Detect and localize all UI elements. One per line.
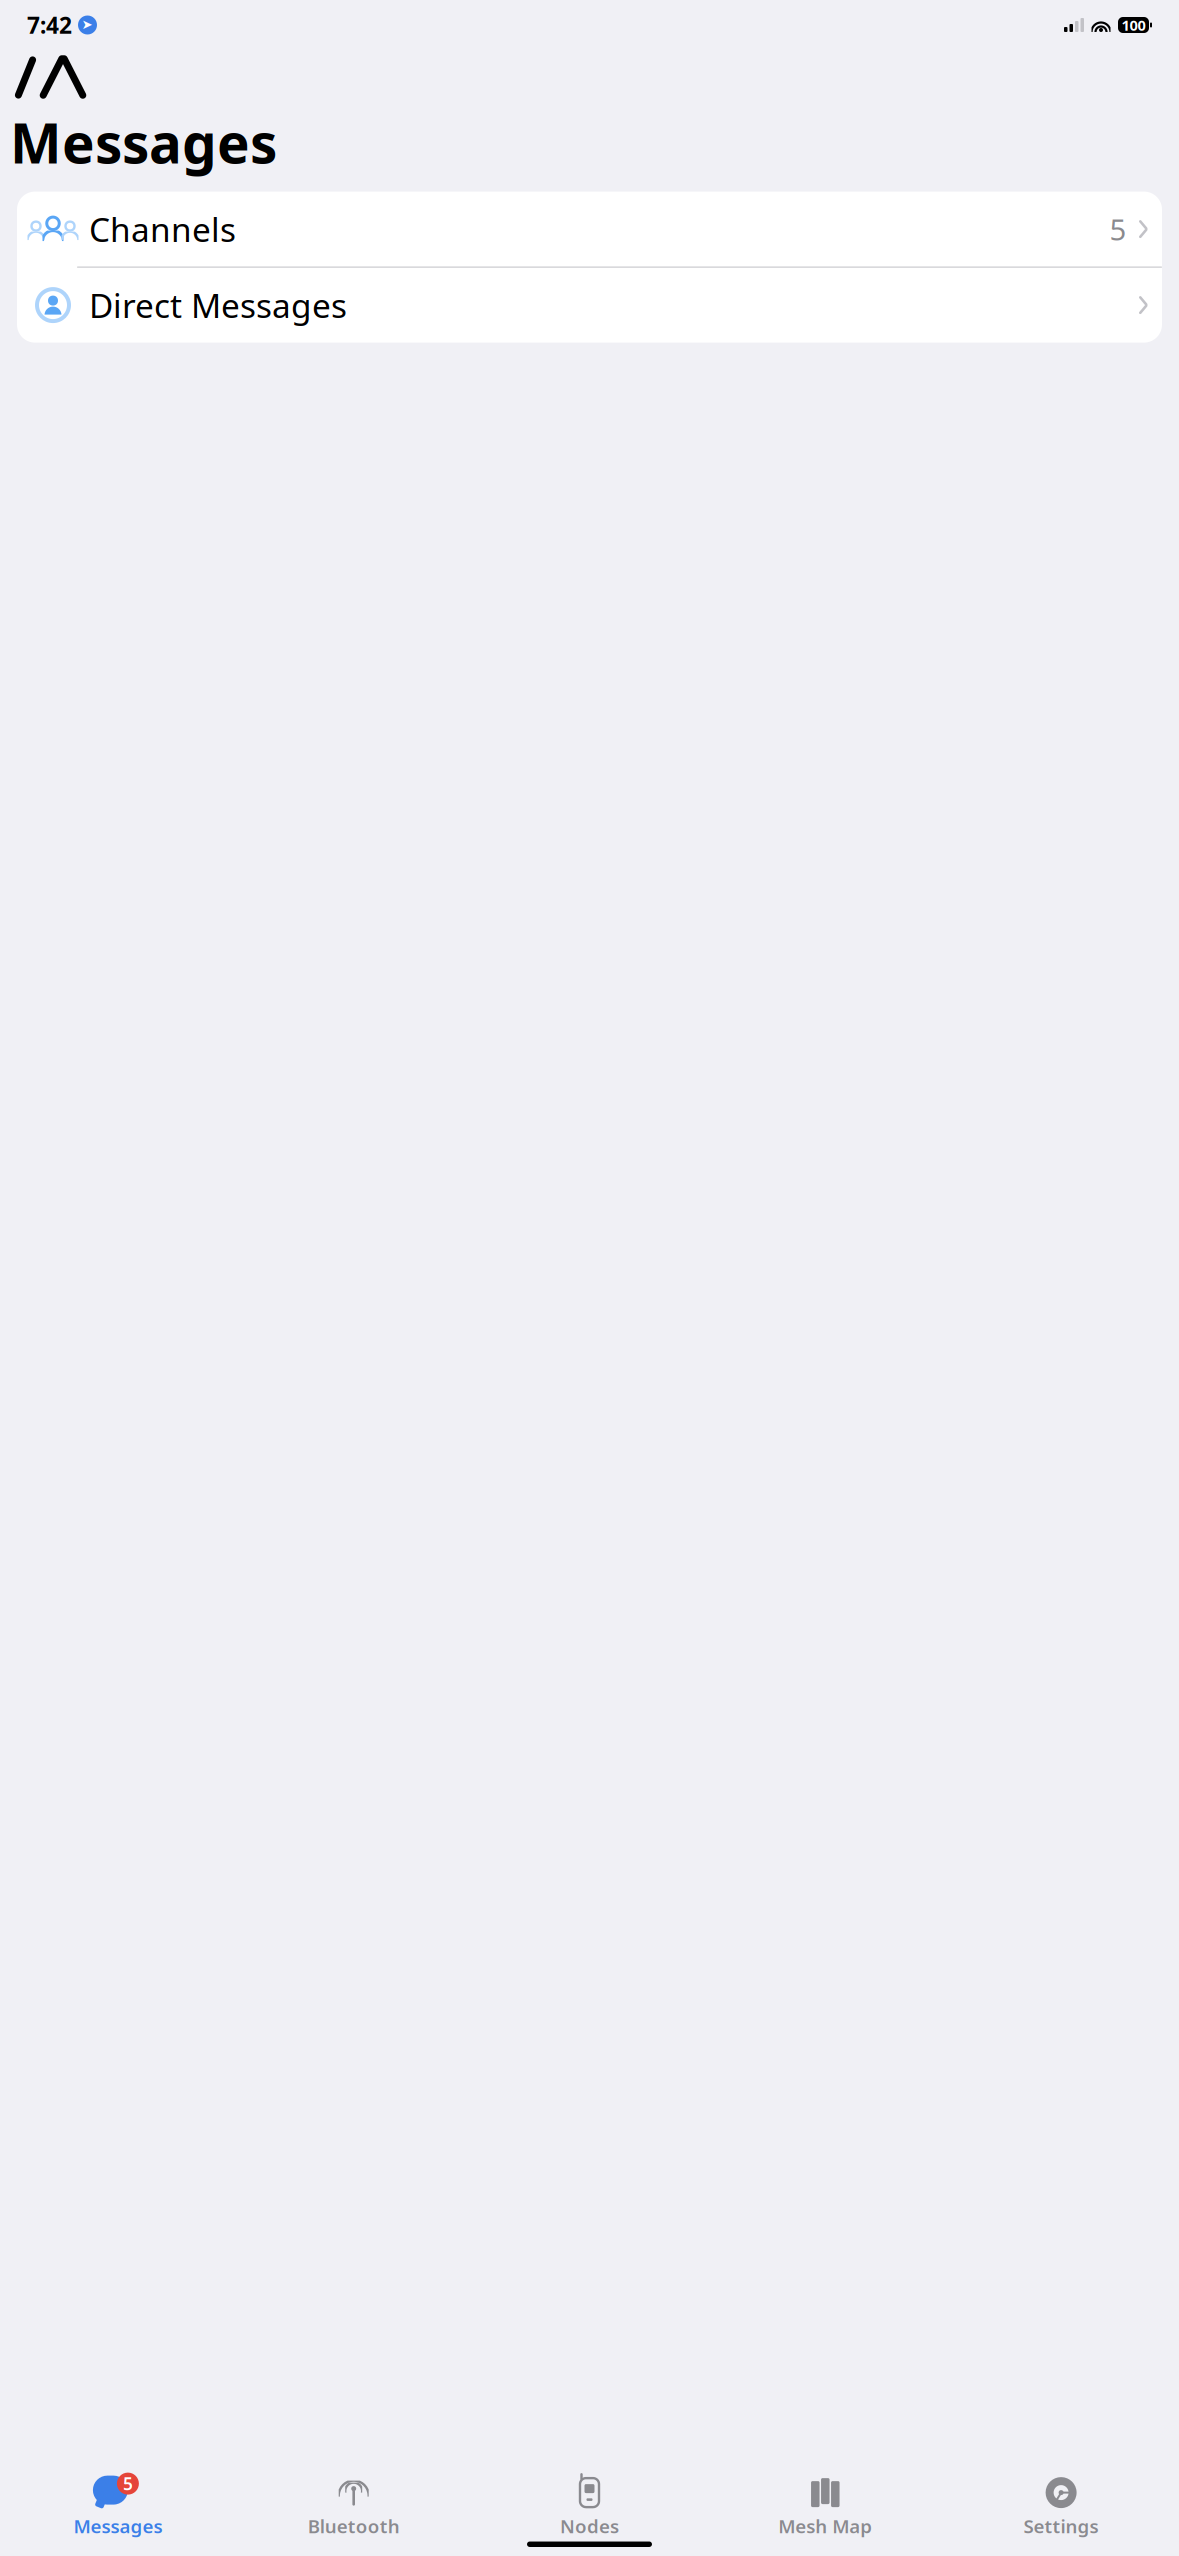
staticText: 100 [1121,15,1145,35]
button[interactable]: Direct Messages [17,268,1162,343]
button[interactable]: Channels [17,192,1162,267]
staticText: Nodes [560,2514,619,2538]
staticText: Messages [10,106,277,179]
button[interactable]: 5 [0,2475,236,2537]
staticText: 5 [123,2472,133,2495]
staticText: Mesh Map [778,2514,872,2538]
button[interactable]: Mesh Map [707,2475,943,2537]
staticText: Bluetooth [308,2514,400,2538]
button[interactable]: Nodes [472,2475,707,2537]
staticText: 5 [1109,210,1126,249]
staticText: ➤ [81,17,92,32]
button[interactable]: Settings [943,2475,1179,2537]
staticText: Messages [73,2514,162,2538]
staticText: Direct Messages [89,283,347,327]
staticText: 7:42 [27,10,72,40]
staticText: Channels [89,207,236,251]
staticText: Settings [1024,2514,1099,2538]
button[interactable]: Bluetooth [236,2475,472,2537]
